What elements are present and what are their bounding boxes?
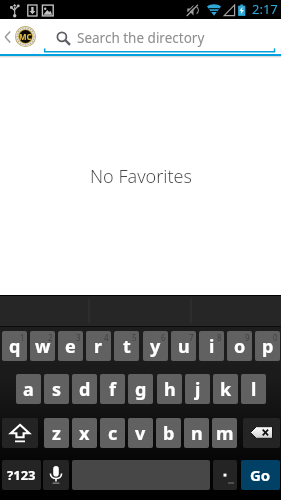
staticText: h [164,377,176,402]
button[interactable]: e [58,331,83,361]
staticText: d [79,377,91,402]
staticText: o [234,334,246,359]
staticText: g [135,377,147,402]
button[interactable]: Voice input [43,460,69,490]
staticText: 2 [48,332,53,343]
button[interactable]: f [100,374,125,404]
staticText: z [52,421,61,446]
button[interactable]: y [143,331,168,361]
button[interactable]: g [128,374,153,404]
staticText: i [209,334,215,359]
button[interactable]: i [199,331,224,361]
staticText: t [123,334,131,359]
staticText: No Favorites [90,164,192,189]
staticText: u [178,334,190,359]
staticText: 1 [20,332,25,343]
button[interactable]: Navigate up [0,19,40,54]
staticText: q [9,334,21,359]
staticText: n [191,421,203,446]
staticText: a [23,377,34,402]
button[interactable]: j [185,374,210,404]
staticText: 5 [132,332,137,343]
button[interactable]: r [86,331,111,361]
staticText: b [163,421,175,446]
staticText: w [35,334,51,359]
button[interactable]: k [213,374,238,404]
button[interactable]: m [212,418,237,448]
staticText: ?123 [7,466,36,484]
staticText: j [195,377,201,402]
staticText: p [262,334,274,359]
button[interactable]: u [171,331,196,361]
button[interactable]: b [156,418,181,448]
button[interactable]: s [44,374,69,404]
button[interactable]: h [157,374,182,404]
staticText: 6 [161,332,166,343]
button[interactable]: Shift [2,418,38,448]
button[interactable]: Search the directory [44,21,275,52]
staticText: 8 [217,332,222,343]
button[interactable]: l [241,374,266,404]
staticText: 4 [104,332,109,343]
staticText: e [65,334,76,359]
staticText: f [109,377,116,402]
staticText: s [52,377,62,402]
button[interactable]: w [30,331,55,361]
staticText: m [216,421,234,446]
staticText: k [220,377,232,402]
button[interactable]: z [44,418,69,448]
button[interactable]: q [2,331,27,361]
button[interactable]: Backspace [243,418,280,448]
staticText: 3 [76,332,81,343]
button[interactable]: d [72,374,97,404]
staticText: 7 [189,332,194,343]
staticText: r [94,334,103,359]
button[interactable]: a [16,374,41,404]
button[interactable]: c [100,418,125,448]
staticText: x [79,421,90,446]
button[interactable]: t [114,331,139,361]
staticText: v [135,421,146,446]
button[interactable]: x [72,418,97,448]
staticText: 9 [245,332,250,343]
button[interactable]: p [255,331,280,361]
button[interactable]: n [184,418,209,448]
button[interactable]: ?123 [2,460,41,490]
staticText: c [108,421,118,446]
button[interactable]: o [227,331,252,361]
staticText: y [150,334,161,359]
staticText: 0 [273,332,278,343]
button[interactable]: Period [213,460,237,490]
staticText: 2:17 [252,0,278,18]
button[interactable]: Go [241,460,280,490]
button[interactable]: v [128,418,153,448]
staticText: Go [250,465,271,485]
staticText: MC [19,31,32,42]
staticText: l [251,377,257,402]
staticText: Search the directory [77,29,205,47]
